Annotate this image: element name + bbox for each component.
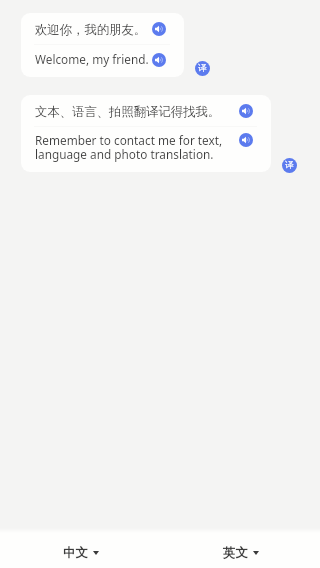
staticText: 译 (285, 160, 294, 171)
staticText: 译 (198, 63, 207, 74)
button[interactable]: Play audio (239, 104, 253, 118)
staticText: Welcome, my friend. (35, 51, 149, 67)
button[interactable]: Play audio (152, 53, 166, 67)
button[interactable]: 文本、语言、拍照翻译记得找我。 (21, 95, 271, 172)
button[interactable]: 英文 (160, 533, 320, 568)
staticText: 英文 (223, 545, 248, 561)
button[interactable]: Translate (282, 158, 297, 173)
button[interactable]: 欢迎你，我的朋友。 (21, 13, 184, 77)
button[interactable]: Play audio (239, 133, 253, 147)
staticText: 文本、语言、拍照翻译记得找我。 (35, 104, 221, 120)
staticText: Remember to contact me for text, languag… (35, 132, 240, 162)
staticText: 中文 (63, 545, 88, 561)
button[interactable]: Play audio (152, 22, 166, 36)
button[interactable]: Translate (195, 61, 210, 76)
button[interactable]: 中文 (0, 533, 160, 568)
staticText: 欢迎你，我的朋友。 (35, 22, 147, 38)
